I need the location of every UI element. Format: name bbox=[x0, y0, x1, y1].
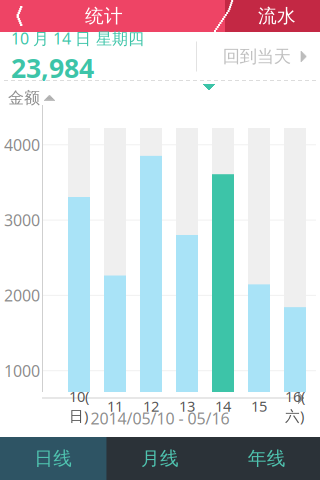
staticText: 3000 bbox=[4, 209, 40, 231]
staticText: 2000 bbox=[4, 285, 40, 306]
staticText: 11 bbox=[107, 396, 123, 416]
button[interactable]: Back bbox=[0, 0, 44, 32]
button[interactable]: 流水 bbox=[234, 0, 320, 32]
staticText: 14 bbox=[215, 396, 231, 416]
staticText: 13 bbox=[179, 396, 195, 416]
button[interactable]: 统计 bbox=[44, 0, 164, 32]
button[interactable]: 年线 bbox=[213, 437, 320, 480]
staticText: 流水 bbox=[258, 4, 296, 27]
staticText: 统计 bbox=[85, 4, 123, 27]
button[interactable]: 回到当天 bbox=[197, 32, 320, 81]
staticText: 月线 bbox=[141, 447, 179, 470]
staticText: 金额 bbox=[8, 88, 40, 108]
staticText: 回到当天 bbox=[223, 46, 291, 67]
staticText: 23,984 bbox=[11, 50, 94, 85]
staticText: 4000 bbox=[4, 134, 40, 155]
staticText: 日线 bbox=[34, 447, 72, 470]
staticText: 2014/05/10 - 05/16 bbox=[90, 408, 229, 429]
staticText: 10 月 14 日 星期四 bbox=[11, 28, 144, 49]
staticText: 16(六) bbox=[285, 386, 305, 425]
staticText: 12 bbox=[143, 396, 159, 416]
staticText: 10(日) bbox=[69, 386, 89, 425]
button[interactable]: 日线 bbox=[0, 437, 107, 480]
button[interactable]: 月线 bbox=[107, 437, 213, 480]
staticText: 15 bbox=[251, 396, 267, 416]
staticText: 年线 bbox=[248, 447, 286, 470]
staticText: 1000 bbox=[4, 360, 40, 381]
